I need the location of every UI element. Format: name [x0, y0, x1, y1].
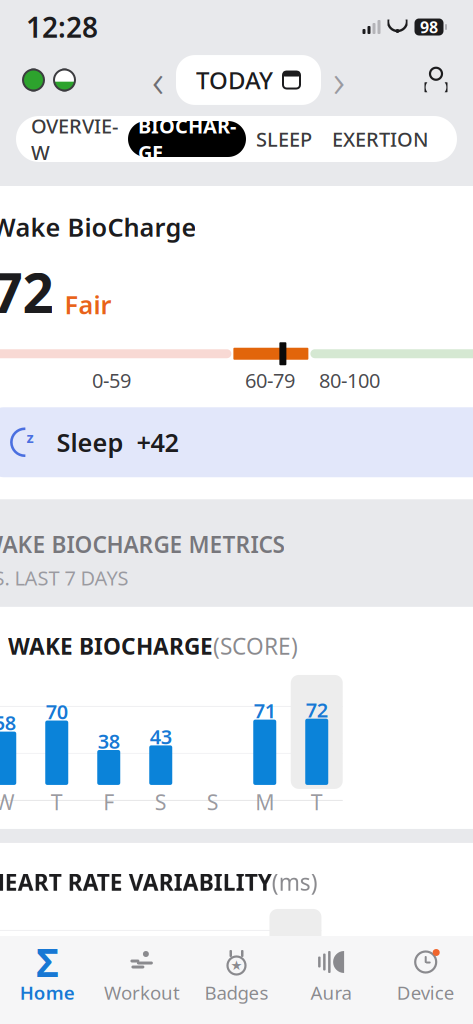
- staticText: z: [26, 427, 33, 447]
- staticText: T: [311, 788, 323, 816]
- staticText: TODAY: [196, 64, 273, 96]
- staticText: T: [51, 788, 63, 816]
- staticText: 29: [232, 958, 254, 985]
- staticText: 70: [46, 698, 68, 725]
- staticText: Wake BioCharge: [0, 210, 196, 244]
- staticText: 30: [128, 951, 150, 978]
- staticText: 43: [150, 723, 172, 750]
- button[interactable]: z: [0, 407, 473, 477]
- button[interactable]: EXERTION: [322, 121, 439, 157]
- staticText: OVERVIEW: [31, 112, 118, 165]
- button[interactable]: BIOCHARGE: [128, 121, 246, 157]
- staticText: W: [0, 788, 15, 816]
- staticText: 12:28: [26, 8, 98, 46]
- staticText: 60-79: [245, 367, 295, 394]
- staticText: SLEEP: [256, 126, 312, 152]
- staticText: S: [207, 788, 219, 816]
- staticText: ‹: [152, 50, 164, 110]
- button[interactable]: Σ: [0, 943, 95, 1023]
- staticText: Fair: [64, 288, 111, 321]
- staticText: 29: [24, 958, 46, 985]
- button[interactable]: Device: [378, 943, 473, 1023]
- staticText: Aura: [311, 980, 352, 1005]
- button[interactable]: Workout: [95, 943, 189, 1023]
- button[interactable]: WAKE BIOCHARGE: [0, 607, 473, 675]
- staticText: HEART RATE VARIABILITY: [0, 867, 272, 897]
- staticText: 72: [306, 696, 328, 723]
- button[interactable]: OVERVIEW: [21, 121, 128, 157]
- staticText: Home: [20, 980, 75, 1005]
- staticText: 98: [420, 16, 438, 38]
- staticText: 71: [254, 697, 276, 724]
- staticText: Σ: [36, 936, 58, 988]
- button[interactable]: ★: [189, 943, 284, 1023]
- button[interactable]: Profile: [417, 60, 455, 100]
- staticText: 80-100: [319, 367, 380, 394]
- staticText: Badges: [204, 980, 268, 1005]
- staticText: 34: [284, 931, 306, 958]
- staticText: S: [155, 788, 167, 816]
- staticText: 58: [0, 709, 16, 736]
- staticText: (SCORE): [213, 631, 298, 661]
- button[interactable]: TODAY: [176, 55, 321, 105]
- staticText: F: [103, 788, 114, 816]
- staticText: ★: [230, 958, 242, 973]
- staticText: (ms): [272, 867, 318, 897]
- staticText: 38: [98, 728, 120, 754]
- staticText: M: [255, 788, 274, 816]
- staticText: Device: [397, 980, 455, 1005]
- staticText: EXERTION: [332, 126, 429, 152]
- staticText: 72: [0, 256, 53, 328]
- staticText: Workout: [104, 980, 180, 1005]
- staticText: +42: [136, 425, 178, 459]
- staticText: Sleep: [56, 425, 123, 459]
- button[interactable]: Aura: [284, 943, 378, 1023]
- staticText: VS. LAST 7 DAYS: [0, 564, 128, 591]
- staticText: WAKE BIOCHARGE METRICS: [0, 529, 284, 559]
- staticText: ›: [333, 50, 345, 110]
- button[interactable]: HEART RATE VARIABILITY: [0, 843, 473, 909]
- button[interactable]: Previous day: [140, 62, 176, 98]
- button[interactable]: Next day: [321, 62, 357, 98]
- staticText: 0-59: [92, 367, 131, 394]
- button[interactable]: SLEEP: [246, 121, 322, 157]
- staticText: WAKE BIOCHARGE: [8, 631, 213, 661]
- button[interactable]: Connected devices: [18, 59, 80, 100]
- staticText: BIOCHARGE: [138, 112, 236, 165]
